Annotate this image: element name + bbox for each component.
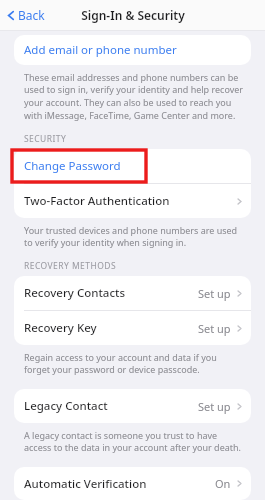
staticText: On	[215, 476, 231, 491]
button[interactable]: Legacy Contact	[14, 389, 251, 423]
staticText: RECOVERY METHODS	[24, 260, 117, 272]
staticText: A legacy contact is someone you trust to…	[24, 429, 245, 454]
staticText: Sign-In & Security	[81, 7, 185, 23]
staticText: Recovery Key	[24, 320, 97, 336]
staticText: Set up	[198, 321, 231, 336]
button[interactable]: Change Password	[14, 149, 251, 183]
staticText: SECURITY	[24, 133, 67, 145]
button[interactable]: Add email or phone number	[14, 35, 251, 65]
staticText: Your trusted devices and phone numbers a…	[24, 224, 245, 249]
staticText: Set up	[198, 286, 231, 301]
staticText: Add email or phone number	[24, 42, 177, 58]
button[interactable]: Back	[0, 2, 53, 28]
button[interactable]: Two-Factor Authentication	[14, 184, 251, 218]
staticText: Legacy Contact	[24, 398, 108, 414]
staticText: Back	[18, 7, 45, 23]
staticText: Change Password	[24, 158, 121, 174]
staticText: Two-Factor Authentication	[24, 193, 170, 209]
staticText: Automatic Verification	[24, 476, 147, 492]
button[interactable]: Recovery Contacts	[14, 276, 251, 310]
staticText: Set up	[198, 399, 231, 414]
staticText: Regain access to your account and data i…	[24, 351, 245, 376]
button[interactable]: Automatic Verification	[14, 467, 251, 500]
button[interactable]: Recovery Key	[14, 311, 251, 345]
staticText: These email addresses and phone numbers …	[24, 71, 245, 122]
staticText: Recovery Contacts	[24, 285, 126, 301]
